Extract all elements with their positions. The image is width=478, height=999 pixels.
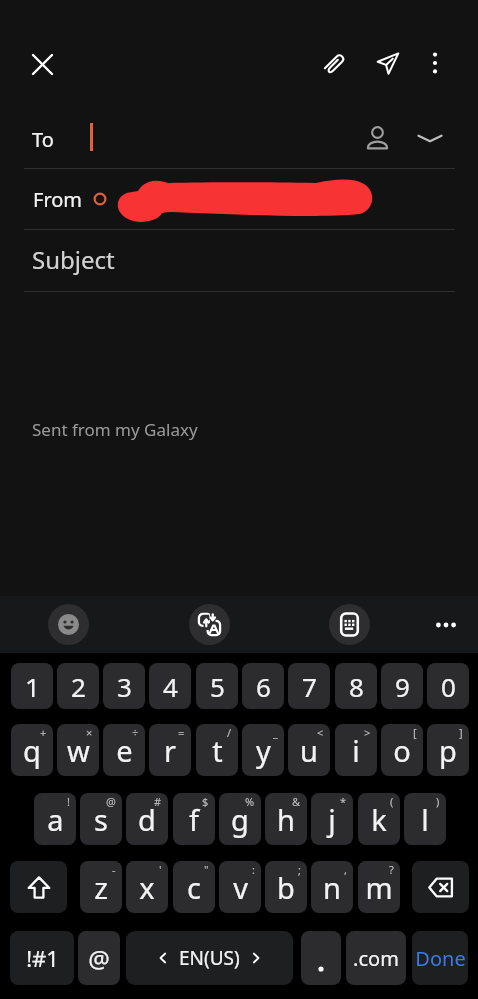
button[interactable]: .com	[346, 931, 406, 985]
button[interactable]: r	[149, 724, 191, 776]
staticText: ;	[298, 862, 301, 877]
button[interactable]: Done	[412, 931, 468, 985]
staticText: +	[40, 725, 47, 740]
staticText: d	[138, 800, 156, 839]
staticText: m	[365, 868, 393, 907]
button[interactable]: Close	[19, 41, 65, 87]
button[interactable]: Attach	[312, 40, 358, 86]
button[interactable]: 8	[335, 663, 377, 709]
button[interactable]: e	[103, 724, 145, 776]
staticText: h	[277, 800, 295, 839]
staticText: &	[292, 794, 301, 809]
button[interactable]: More	[425, 604, 466, 645]
button[interactable]: Backspace	[412, 861, 469, 913]
staticText: g	[231, 800, 249, 839]
button[interactable]: m	[358, 861, 400, 913]
button[interactable]: 1	[11, 663, 53, 709]
staticText: l	[421, 800, 429, 839]
button[interactable]: l	[404, 793, 446, 845]
staticText: t	[212, 731, 223, 770]
staticText: =	[178, 725, 185, 740]
button[interactable]: 5	[196, 663, 238, 709]
staticText: 7	[302, 669, 317, 704]
button[interactable]: s	[80, 793, 122, 845]
button[interactable]: f	[173, 793, 215, 845]
button[interactable]: Keyboard settings	[329, 604, 370, 645]
staticText: '	[159, 862, 162, 877]
staticText: 1	[25, 669, 40, 704]
staticText: ×	[86, 725, 93, 740]
staticText: j	[328, 800, 336, 839]
button[interactable]: d	[126, 793, 168, 845]
button[interactable]: b	[265, 861, 307, 913]
staticText: EN(US)	[179, 945, 240, 971]
staticText: f	[189, 800, 199, 839]
staticText: [	[413, 725, 417, 740]
button[interactable]: More options	[412, 40, 458, 86]
button[interactable]: h	[265, 793, 307, 845]
button[interactable]: Shift	[10, 861, 67, 913]
button[interactable]: !#1	[10, 931, 74, 985]
button[interactable]: p	[427, 724, 469, 776]
staticText: $	[202, 794, 209, 809]
button[interactable]: q	[11, 724, 53, 776]
staticText: 2	[71, 669, 86, 704]
staticText: r	[164, 731, 176, 770]
staticText: e	[116, 731, 133, 770]
staticText: !	[67, 794, 70, 809]
staticText: q	[23, 731, 41, 770]
button[interactable]: o	[381, 724, 423, 776]
button[interactable]: 4	[149, 663, 191, 709]
staticText: 0	[441, 669, 456, 704]
button[interactable]: t	[196, 724, 238, 776]
staticText: i	[352, 731, 360, 770]
staticText: @	[88, 942, 110, 975]
staticText: #	[154, 794, 162, 809]
staticText: 8	[349, 669, 364, 704]
button[interactable]: Translate	[189, 604, 230, 645]
button[interactable]: Expand recipients	[407, 115, 453, 161]
button[interactable]: 7	[288, 663, 330, 709]
button[interactable]: Send	[365, 40, 411, 86]
staticText: ,	[344, 862, 347, 877]
button[interactable]: 3	[103, 663, 145, 709]
button[interactable]: EN(US)	[126, 931, 293, 985]
button[interactable]: y	[242, 724, 284, 776]
button[interactable]: n	[311, 861, 353, 913]
button[interactable]: 0	[427, 663, 469, 709]
button[interactable]: 6	[242, 663, 284, 709]
button[interactable]: 2	[57, 663, 99, 709]
staticText: c	[187, 868, 201, 907]
staticText: y	[256, 731, 271, 770]
staticText: *	[340, 794, 347, 809]
button[interactable]: z	[80, 861, 122, 913]
button[interactable]: Period	[301, 931, 341, 985]
staticText: 5	[210, 669, 225, 704]
staticText: "	[204, 862, 209, 877]
staticText: :	[252, 862, 255, 877]
staticText: @	[106, 794, 116, 809]
button[interactable]: c	[173, 861, 215, 913]
button[interactable]: @	[78, 931, 120, 985]
staticText: /	[227, 725, 232, 740]
button[interactable]: i	[335, 724, 377, 776]
button[interactable]: Contacts	[354, 115, 400, 161]
staticText: Subject	[32, 243, 115, 276]
button[interactable]: u	[288, 724, 330, 776]
button[interactable]: a	[34, 793, 76, 845]
staticText: )	[436, 794, 440, 809]
button[interactable]: j	[311, 793, 353, 845]
button[interactable]: k	[358, 793, 400, 845]
button[interactable]: x	[126, 861, 168, 913]
button[interactable]: g	[219, 793, 261, 845]
staticText: Done	[415, 945, 466, 972]
button[interactable]: 9	[381, 663, 423, 709]
staticText: z	[94, 868, 108, 907]
button[interactable]: Emoji	[48, 604, 89, 645]
staticText: 4	[163, 669, 178, 704]
staticText: -	[112, 862, 116, 877]
button[interactable]: v	[219, 861, 261, 913]
button[interactable]: w	[57, 724, 99, 776]
staticText: 9	[395, 669, 410, 704]
staticText: a	[47, 800, 64, 839]
